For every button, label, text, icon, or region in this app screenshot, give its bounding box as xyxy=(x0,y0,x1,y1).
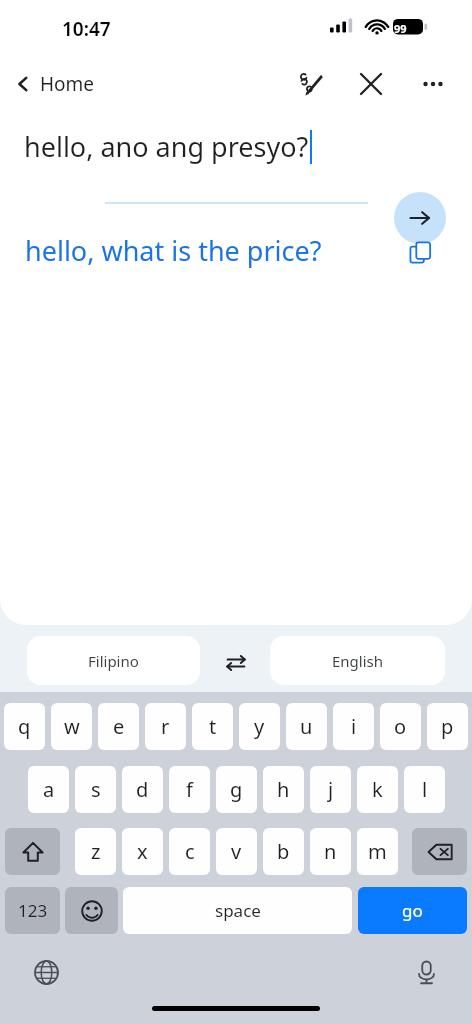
button[interactable]: k xyxy=(357,766,398,813)
button[interactable]: i xyxy=(333,703,374,750)
staticText: hello, ano ang presyo? xyxy=(24,128,309,165)
staticText: Home xyxy=(40,71,95,97)
button[interactable]: q xyxy=(4,703,45,750)
button[interactable]: Close xyxy=(348,61,394,107)
button[interactable]: c xyxy=(169,828,210,875)
staticText: k xyxy=(372,776,383,803)
staticText: v xyxy=(231,838,242,865)
button[interactable]: g xyxy=(216,766,257,813)
button[interactable]: t xyxy=(192,703,233,750)
staticText: p xyxy=(441,713,454,740)
staticText: h xyxy=(277,776,290,803)
button[interactable]: h xyxy=(263,766,304,813)
button[interactable]: Change keyboard language xyxy=(24,950,68,994)
button[interactable]: r xyxy=(145,703,186,750)
button[interactable]: More options xyxy=(410,61,456,107)
button[interactable]: s xyxy=(75,766,116,813)
button[interactable]: Backspace xyxy=(412,828,467,875)
staticText: s xyxy=(91,776,101,803)
staticText: Filipino xyxy=(88,651,139,671)
staticText: l xyxy=(422,776,428,803)
staticText: n xyxy=(324,838,337,865)
button[interactable]: space xyxy=(123,887,352,934)
staticText: a xyxy=(43,776,55,803)
button[interactable]: Translate xyxy=(394,192,446,244)
staticText: hello, what is the price? xyxy=(25,232,322,269)
staticText: j xyxy=(328,776,334,803)
button[interactable]: x xyxy=(122,828,163,875)
button[interactable]: d xyxy=(122,766,163,813)
staticText: space xyxy=(215,899,261,922)
staticText: y xyxy=(254,713,265,740)
button[interactable]: z xyxy=(75,828,116,875)
staticText: English xyxy=(332,651,384,671)
staticText: go xyxy=(402,899,423,922)
staticText: i xyxy=(351,713,357,740)
staticText: 99 xyxy=(394,21,407,36)
button[interactable]: n xyxy=(310,828,351,875)
button[interactable]: e xyxy=(98,703,139,750)
staticText: z xyxy=(91,838,101,865)
button[interactable]: Improve translation xyxy=(288,61,334,107)
button[interactable]: go xyxy=(358,887,467,934)
button[interactable]: p xyxy=(427,703,468,750)
button[interactable]: b xyxy=(263,828,304,875)
button[interactable]: y xyxy=(239,703,280,750)
staticText: 10:47 xyxy=(62,16,111,42)
staticText: r xyxy=(161,713,170,740)
button[interactable]: o xyxy=(380,703,421,750)
button[interactable]: w xyxy=(51,703,92,750)
button[interactable]: j xyxy=(310,766,351,813)
staticText: 123 xyxy=(18,899,48,922)
button[interactable]: Voice input xyxy=(404,950,448,994)
button[interactable]: u xyxy=(286,703,327,750)
staticText: w xyxy=(64,713,80,740)
staticText: e xyxy=(113,713,125,740)
staticText: m xyxy=(368,838,387,865)
staticText: g xyxy=(230,776,243,803)
staticText: f xyxy=(186,776,193,803)
staticText: d xyxy=(136,776,149,803)
staticText: q xyxy=(18,713,31,740)
button[interactable]: Filipino xyxy=(27,636,200,685)
button[interactable]: Home xyxy=(0,60,107,108)
staticText: b xyxy=(277,838,290,865)
button[interactable]: f xyxy=(169,766,210,813)
staticText: c xyxy=(185,838,195,865)
button[interactable]: Swap languages xyxy=(214,641,258,685)
button[interactable]: Emoji xyxy=(65,887,118,934)
button[interactable]: l xyxy=(404,766,445,813)
staticText: o xyxy=(394,713,407,740)
button[interactable]: a xyxy=(28,766,69,813)
staticText: u xyxy=(300,713,313,740)
button[interactable]: m xyxy=(357,828,398,875)
staticText: x xyxy=(137,838,148,865)
button[interactable]: English xyxy=(270,636,445,685)
button[interactable]: v xyxy=(216,828,257,875)
button[interactable]: Shift xyxy=(5,828,60,875)
button[interactable]: 123 xyxy=(5,887,60,934)
button[interactable]: Copy translation xyxy=(398,230,442,274)
staticText: t xyxy=(209,713,217,740)
